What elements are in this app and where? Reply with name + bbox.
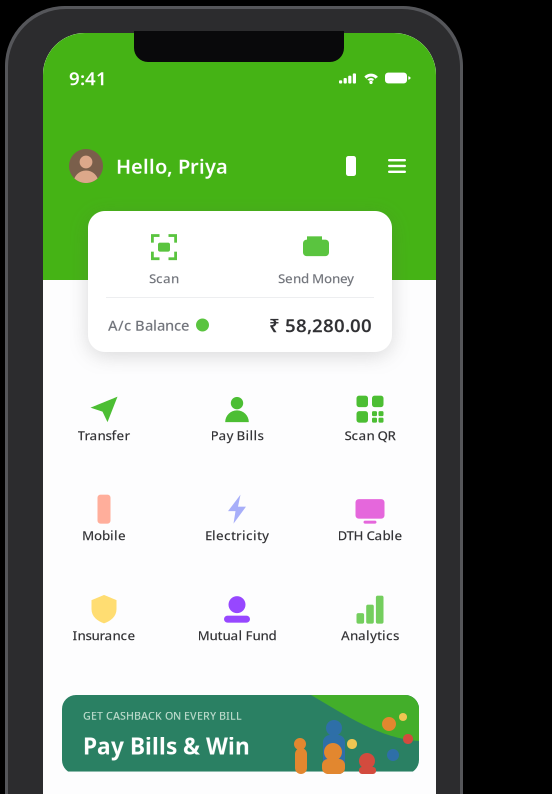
button[interactable]: Scan QR bbox=[311, 390, 429, 448]
staticText: A/c Balance bbox=[108, 315, 189, 335]
button[interactable]: Mutual Fund bbox=[178, 590, 296, 648]
staticText: Mutual Fund bbox=[197, 626, 276, 644]
button[interactable]: Offers bbox=[338, 153, 364, 179]
button[interactable]: Pay Bills bbox=[178, 390, 296, 448]
staticText: Scan QR bbox=[344, 426, 395, 444]
staticText: Mobile bbox=[82, 526, 126, 544]
button[interactable]: Insurance bbox=[45, 590, 163, 648]
staticText: Insurance bbox=[72, 626, 135, 644]
staticText: DTH Cable bbox=[337, 526, 402, 544]
staticText: ₹ 58,280.00 bbox=[269, 313, 372, 337]
staticText: 9:41 bbox=[69, 66, 107, 90]
staticText: Transfer bbox=[77, 426, 130, 444]
button[interactable]: Transfer bbox=[45, 390, 163, 448]
staticText: Electricity bbox=[205, 526, 269, 544]
button[interactable]: DTH Cable bbox=[311, 490, 429, 548]
button[interactable]: Mobile bbox=[45, 490, 163, 548]
staticText: Scan bbox=[149, 269, 179, 287]
staticText: Pay Bills & Win bbox=[83, 731, 250, 761]
button[interactable]: Scan bbox=[149, 233, 179, 287]
button[interactable]: Menu bbox=[384, 153, 410, 179]
staticText: Pay Bills bbox=[210, 426, 263, 444]
staticText: Send Money bbox=[278, 269, 354, 287]
staticText: GET CASHBACK ON EVERY BILL bbox=[83, 708, 242, 723]
button[interactable]: GET CASHBACK ON EVERY BILL bbox=[62, 695, 419, 774]
staticText: Hello, Priya bbox=[116, 153, 228, 179]
staticText: Analytics bbox=[341, 626, 399, 644]
button[interactable]: Send Money bbox=[278, 233, 354, 287]
button[interactable]: Analytics bbox=[311, 590, 429, 648]
button[interactable]: Electricity bbox=[178, 490, 296, 548]
